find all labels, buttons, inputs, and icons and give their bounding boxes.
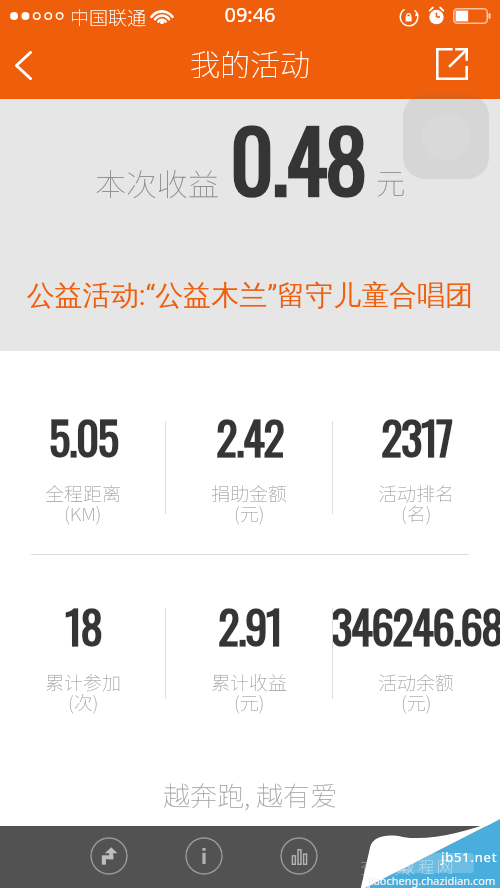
- staticText: 查字典: [360, 854, 411, 879]
- staticText: (元): [234, 688, 265, 716]
- button[interactable]: Route: [90, 837, 128, 875]
- button[interactable]: Assistive touch: [403, 94, 489, 179]
- staticText: (名): [401, 499, 432, 527]
- staticText: 346246.68: [331, 592, 500, 659]
- staticText: jb51.net: [441, 848, 498, 866]
- staticText: 越奔跑, 越有爱: [0, 775, 500, 814]
- staticText: 09:46: [0, 1, 500, 28]
- staticText: 累计参加: [45, 668, 122, 696]
- staticText: (元): [401, 688, 432, 716]
- staticText: 教程网: [399, 854, 457, 877]
- staticText: 2.42: [216, 403, 284, 470]
- button[interactable]: Back: [0, 38, 46, 92]
- staticText: jiaocheng.chazidian.com: [368, 873, 496, 888]
- staticText: (KM): [64, 499, 102, 527]
- staticText: 18: [65, 592, 102, 659]
- staticText: 中国联通: [70, 3, 147, 31]
- staticText: 公益活动:“公益木兰”留守儿童合唱团: [0, 278, 500, 313]
- staticText: 捐助金额: [211, 479, 288, 507]
- staticText: 0.48: [230, 95, 366, 221]
- button[interactable]: Info: [185, 837, 223, 875]
- staticText: 活动余额: [378, 668, 455, 696]
- staticText: 我的活动: [0, 41, 500, 84]
- staticText: (次): [68, 688, 99, 716]
- staticText: 本次收益: [95, 160, 219, 205]
- staticText: 2.91: [218, 592, 282, 659]
- button[interactable]: Share: [427, 38, 477, 90]
- staticText: 累计收益: [211, 668, 288, 696]
- staticText: 元: [376, 160, 406, 202]
- staticText: 2317: [381, 403, 452, 470]
- staticText: 活动排名: [378, 479, 455, 507]
- staticText: 全程距离: [45, 479, 122, 507]
- staticText: (元): [234, 499, 265, 527]
- button[interactable]: Statistics: [280, 837, 318, 875]
- staticText: 5.05: [49, 403, 118, 470]
